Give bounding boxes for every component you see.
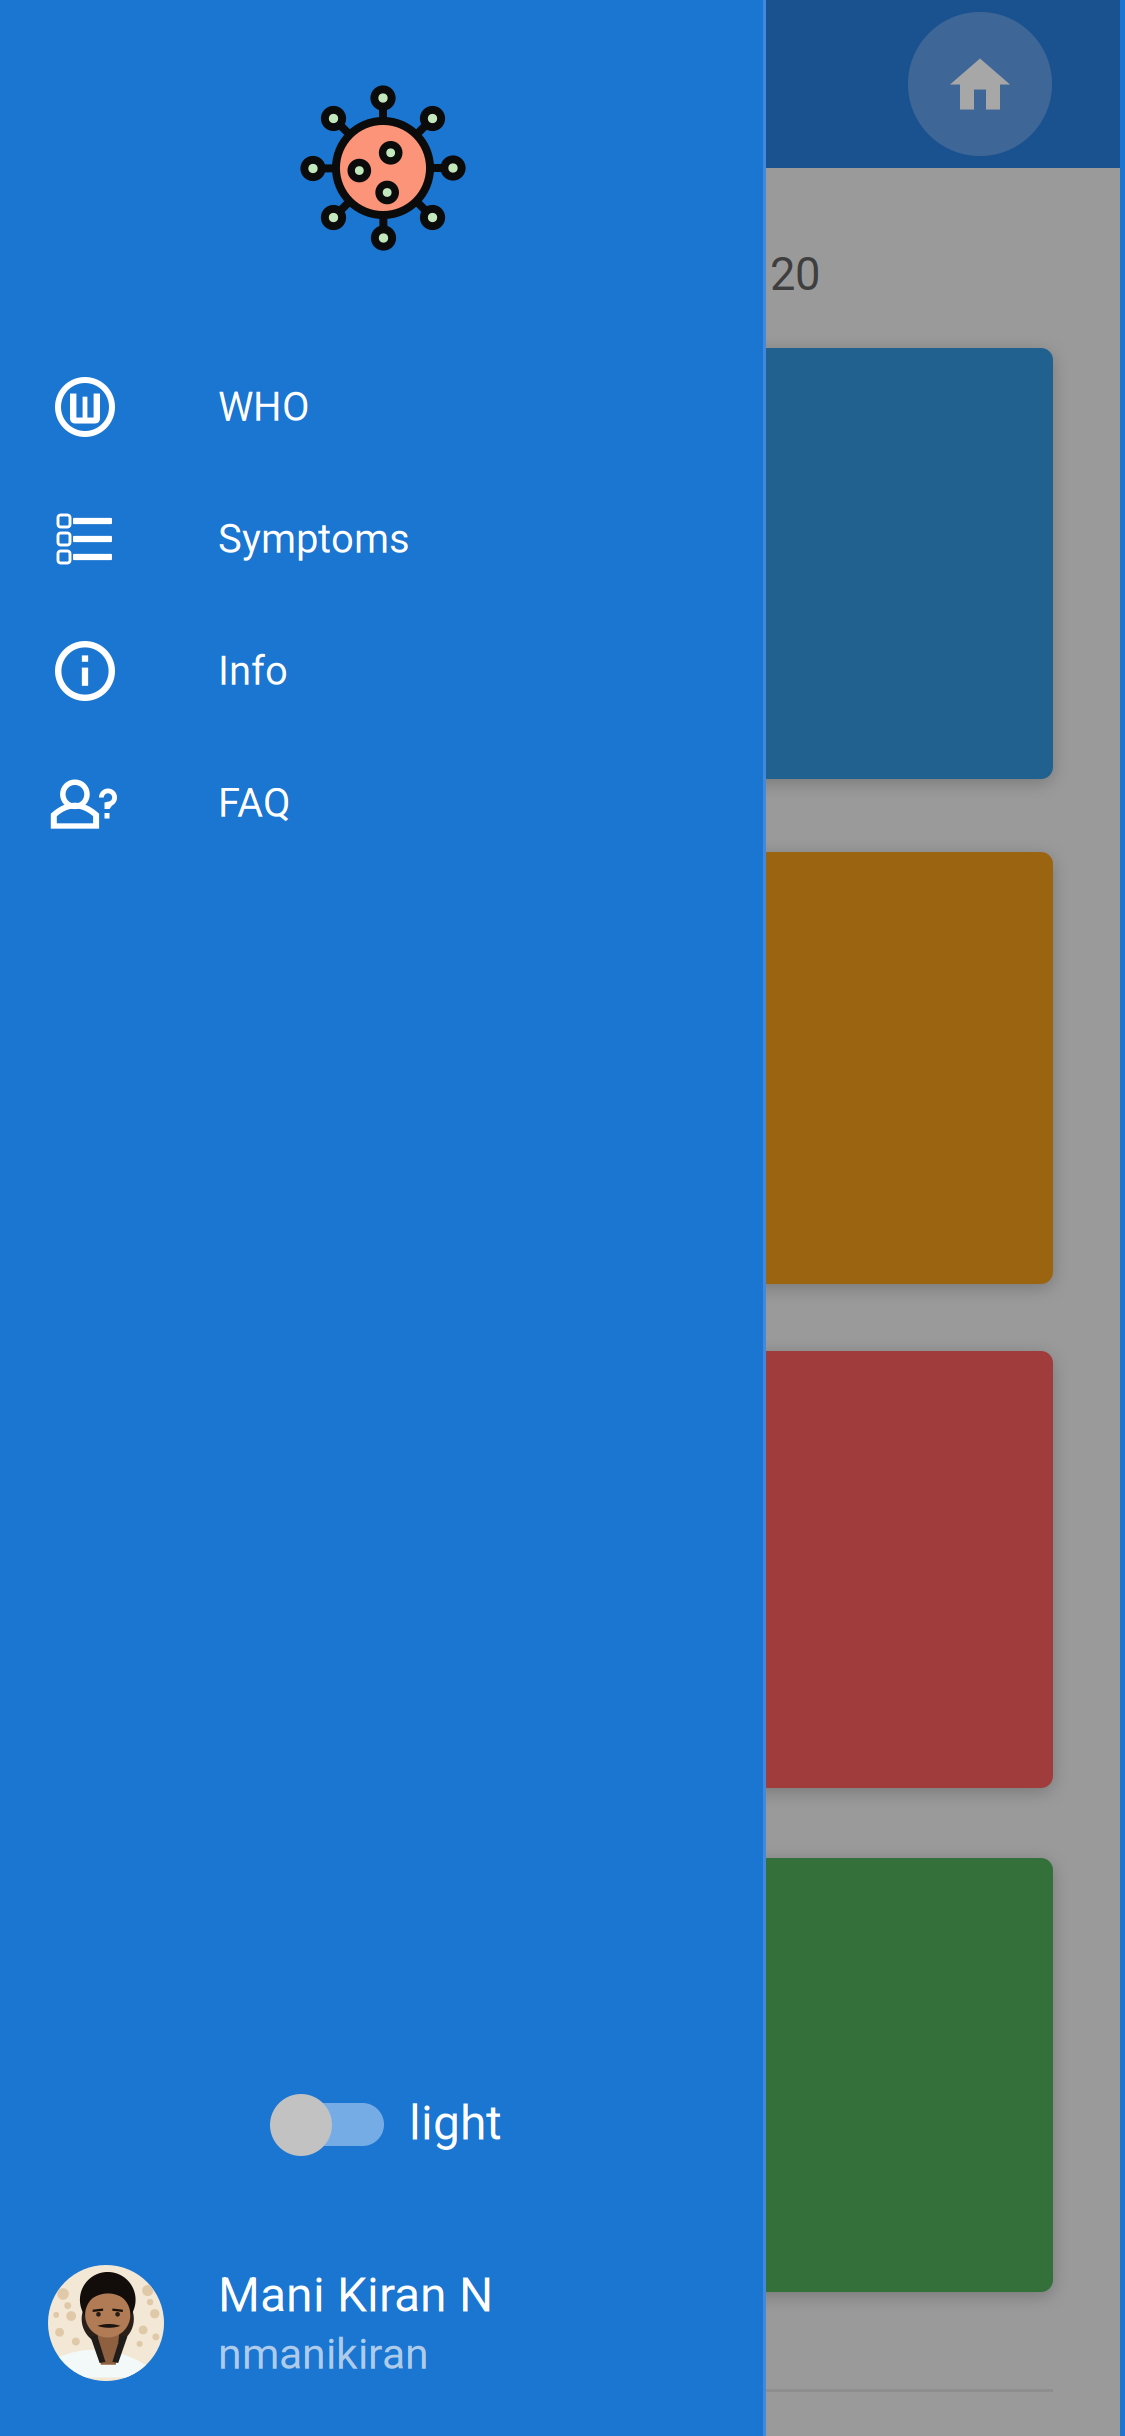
button[interactable]: FAQ — [0, 748, 766, 858]
staticText: Info — [218, 648, 288, 694]
staticText: light — [409, 2095, 502, 2151]
button[interactable]: Home — [908, 12, 1052, 156]
button[interactable]: Mani Kiran N — [0, 2261, 766, 2385]
button[interactable]: Symptoms — [0, 484, 766, 594]
staticText: FAQ — [218, 780, 291, 826]
staticText: Mani Kiran N — [218, 2267, 493, 2323]
staticText: WHO — [218, 384, 310, 430]
staticText: nmanikiran — [218, 2329, 429, 2379]
button[interactable]: Info — [0, 616, 766, 726]
staticText: Mar 20 — [679, 248, 820, 301]
button[interactable]: WHO — [0, 352, 766, 462]
staticText: Symptoms — [218, 516, 410, 562]
button[interactable]: light — [0, 2082, 766, 2178]
